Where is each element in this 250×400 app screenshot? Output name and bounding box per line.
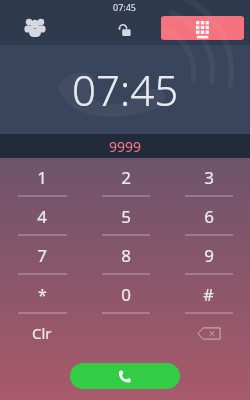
staticText: 1: [37, 166, 47, 189]
button[interactable]: Contacts: [22, 15, 48, 41]
staticText: 07:45: [72, 61, 179, 118]
staticText: 4: [37, 205, 47, 228]
staticText: 3: [204, 166, 214, 189]
button[interactable]: 9: [167, 236, 250, 275]
button[interactable]: 5: [84, 197, 167, 236]
staticText: *: [38, 284, 47, 306]
staticText: 2: [121, 166, 131, 189]
staticText: 07:45: [113, 1, 137, 13]
staticText: 7: [37, 244, 47, 267]
button[interactable]: Clr: [0, 314, 84, 352]
staticText: 9: [204, 244, 214, 267]
staticText: 9999: [109, 137, 142, 156]
staticText: #: [203, 284, 214, 306]
staticText: 6: [204, 205, 214, 228]
staticText: Clr: [32, 323, 52, 343]
button[interactable]: Call: [70, 363, 180, 389]
button[interactable]: 6: [167, 197, 250, 236]
button[interactable]: Unlock: [113, 17, 137, 41]
button[interactable]: 8: [84, 236, 167, 275]
button[interactable]: 1: [0, 158, 84, 197]
button[interactable]: 3: [167, 158, 250, 197]
button[interactable]: #: [167, 275, 250, 314]
button[interactable]: 4: [0, 197, 84, 236]
staticText: 5: [121, 205, 131, 228]
button[interactable]: Dialpad: [161, 16, 244, 40]
button[interactable]: Backspace: [167, 314, 250, 352]
button[interactable]: 0: [84, 275, 167, 314]
button[interactable]: 2: [84, 158, 167, 197]
staticText: 0: [121, 283, 131, 306]
staticText: 8: [121, 244, 131, 267]
button[interactable]: *: [0, 275, 84, 314]
button[interactable]: 7: [0, 236, 84, 275]
